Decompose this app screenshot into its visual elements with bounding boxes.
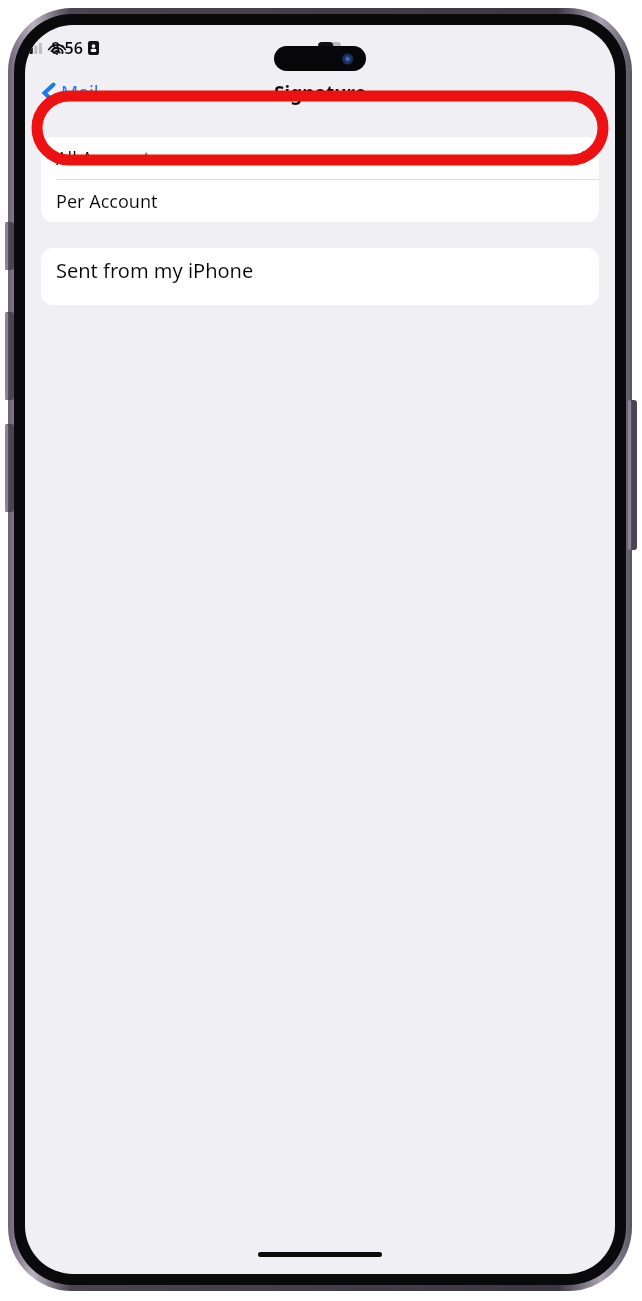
staticText: 62 [321,43,332,55]
button[interactable]: Sent from my iPhone [41,248,599,305]
button[interactable]: All Accounts [41,137,599,179]
staticText: Mail [61,80,99,106]
staticText: All Accounts [56,146,159,171]
staticText: Signature [274,80,366,106]
staticText: Sent from my iPhone [56,257,254,284]
button[interactable]: Per Account [41,180,599,222]
staticText: 8:56 [51,37,83,59]
staticText: Per Account [56,189,158,214]
button[interactable]: Mail [25,76,109,110]
